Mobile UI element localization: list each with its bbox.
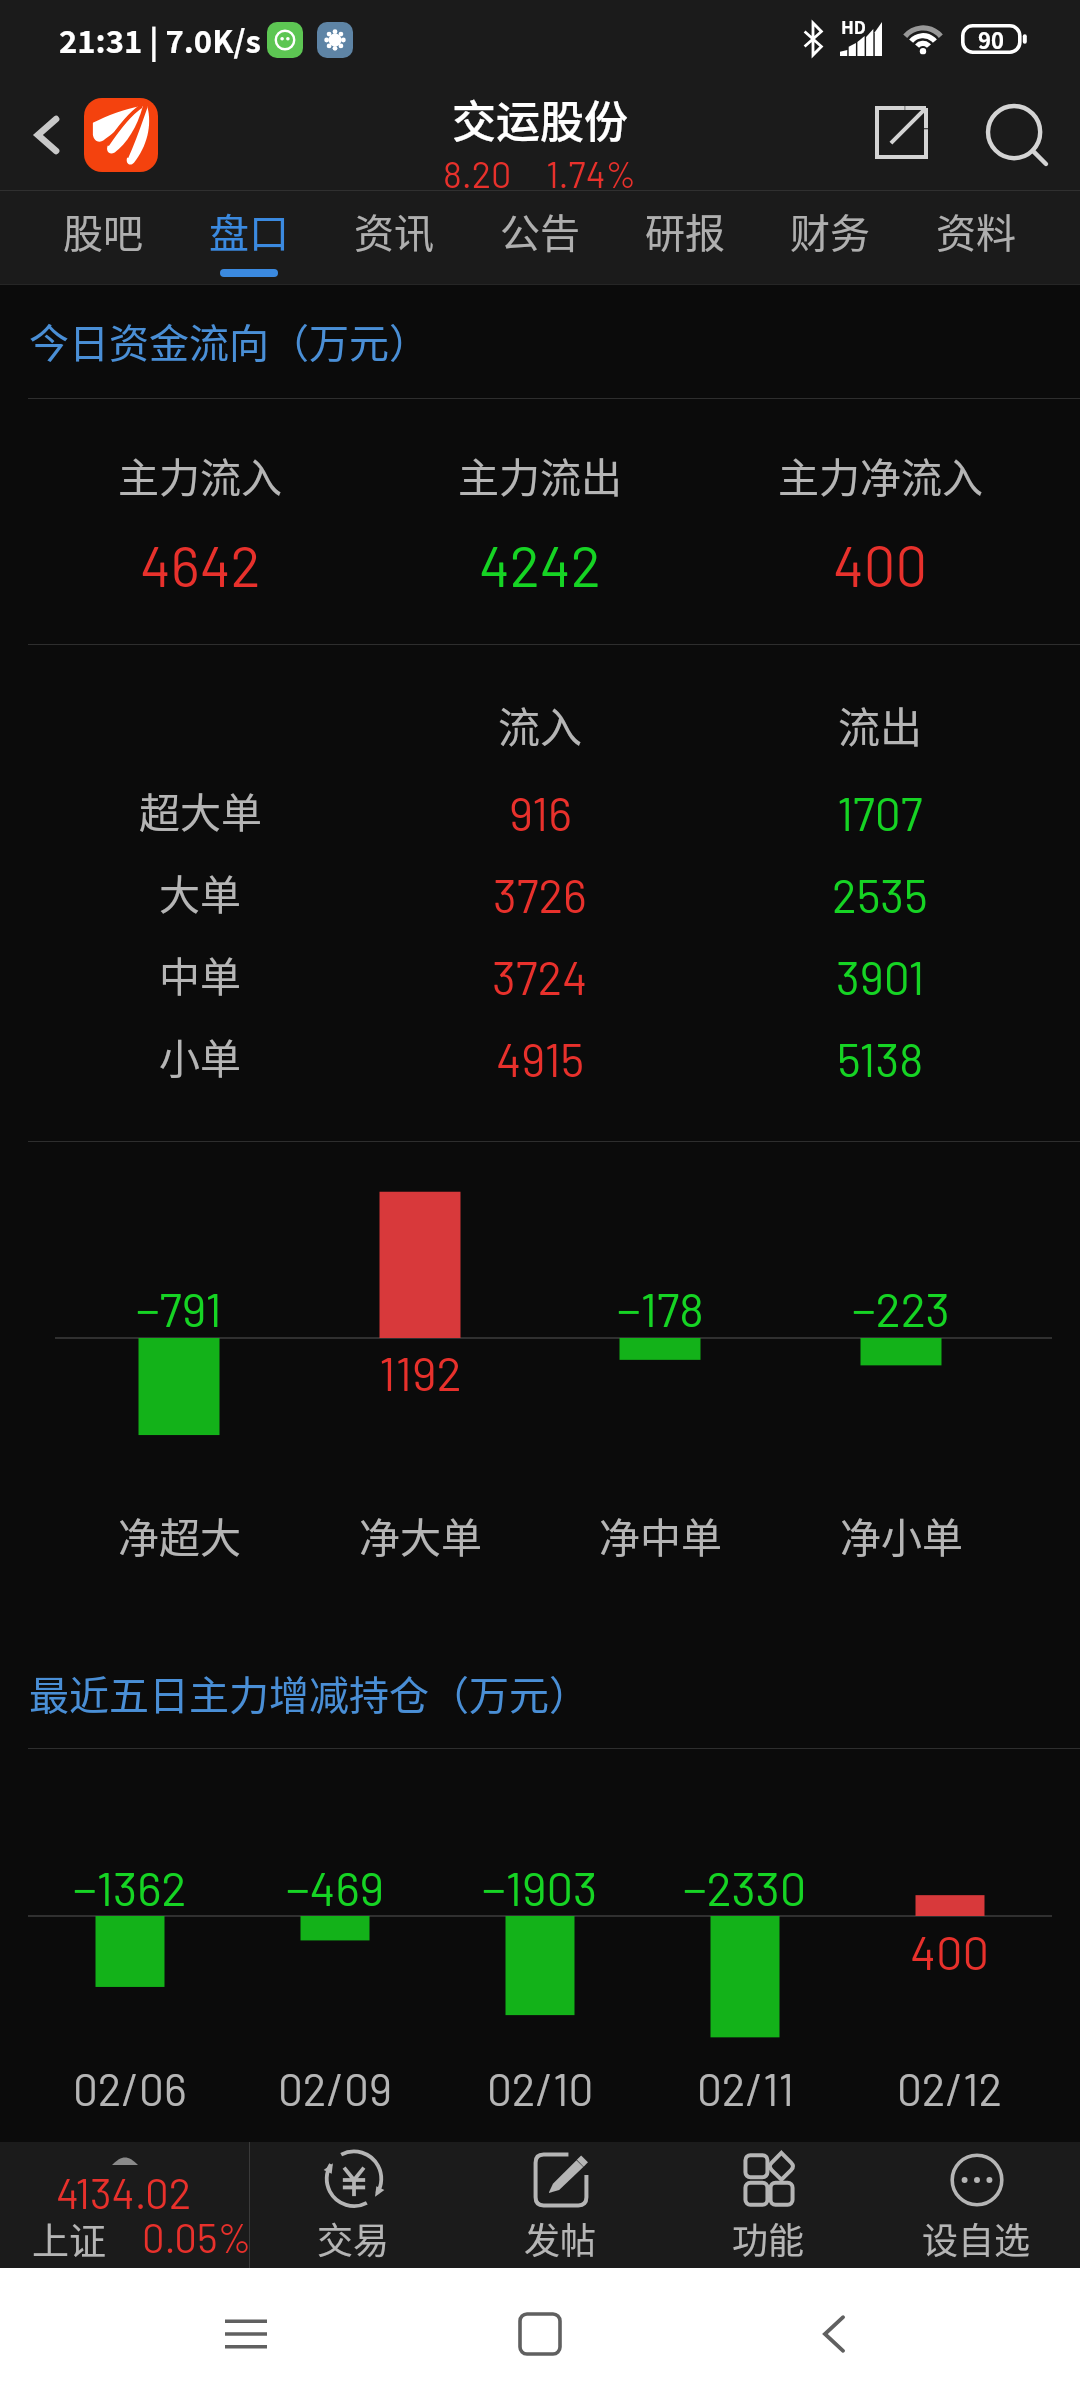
staticText: HD [841,14,867,39]
staticText: 02/10 [487,2062,594,2115]
button[interactable]: Recents [198,2286,294,2382]
button[interactable]: 发帖 [457,2142,664,2268]
staticText: 主力净流入 [778,445,983,504]
button[interactable]: 盘口 [177,191,321,285]
staticText: 400 [910,1923,990,1979]
staticText: 02/12 [897,2062,1003,2115]
staticText: 今日资金流向（万元） [29,312,429,370]
staticText: 净小单 [840,1505,963,1564]
button[interactable]: Share [861,92,941,172]
button[interactable]: 资讯 [322,191,466,285]
staticText: 流入 [498,694,583,755]
staticText: 4242 [479,531,601,598]
staticText: 净超大 [118,1505,241,1564]
button[interactable]: Back [14,102,80,168]
staticText: 3726 [493,867,587,922]
staticText: 盘口 [209,202,289,260]
staticText: 交易 [317,2212,390,2264]
staticText: 资料 [936,202,1016,260]
staticText: 资讯 [354,202,434,260]
staticText: 中单 [159,944,241,1003]
staticText: 1192 [379,1344,462,1400]
staticText: 1.74% [546,152,637,195]
staticText: 最近五日主力增减持仓（万元） [29,1664,589,1722]
staticText: 主力流出 [458,445,622,504]
staticText: 4134.02 [56,2167,192,2217]
staticText: 交运股份 [452,87,628,151]
button[interactable]: Search [974,92,1060,178]
staticText: 主力流入 [118,445,282,504]
button[interactable]: Back [786,2286,882,2382]
staticText: 流出 [838,694,923,755]
button[interactable]: 财务 [758,191,902,285]
staticText: 设自选 [922,2212,1031,2264]
staticText: 4915 [496,1031,585,1086]
staticText: 功能 [732,2212,805,2264]
staticText: 1707 [837,785,923,840]
staticText: 3724 [492,949,588,1004]
button[interactable]: 研报 [613,191,757,285]
staticText: 股吧 [63,202,143,260]
staticText: 400 [833,531,928,598]
staticText: 8.20 [443,152,512,195]
staticText: 超大单 [139,780,262,839]
staticText: 5138 [837,1031,924,1086]
button[interactable]: 公告 [468,191,612,285]
staticText: 净中单 [599,1505,722,1564]
staticText: 90 [978,23,1004,55]
button[interactable]: 股吧 [31,191,175,285]
button[interactable]: 4134.02 [0,2142,250,2268]
staticText: 21:31 | 7.0K/s [59,17,261,62]
staticText: 02/09 [278,2062,392,2115]
staticText: −2330 [683,1859,807,1915]
staticText: 916 [509,785,572,840]
staticText: 0.05% [142,2213,252,2261]
button[interactable]: 功能 [664,2142,872,2268]
staticText: 大单 [159,862,241,921]
button[interactable]: 交易 [250,2142,457,2268]
staticText: 02/11 [697,2062,794,2115]
staticText: −223 [852,1280,950,1336]
staticText: 发帖 [524,2212,597,2264]
staticText: −469 [286,1859,385,1915]
staticText: 02/06 [73,2062,187,2115]
staticText: −791 [136,1280,222,1336]
staticText: 公告 [500,202,580,260]
staticText: 研报 [645,202,725,260]
button[interactable]: Home [492,2286,588,2382]
button[interactable]: 设自选 [872,2142,1080,2268]
staticText: 财务 [790,202,870,260]
staticText: −1362 [73,1859,187,1915]
staticText: −178 [617,1280,704,1336]
staticText: 上证 [32,2212,106,2266]
staticText: −1903 [482,1859,598,1915]
staticText: 4642 [140,531,261,598]
button[interactable]: Eastmoney [84,98,158,172]
staticText: 3901 [836,949,925,1004]
staticText: 小单 [159,1026,241,1085]
button[interactable]: 资料 [904,191,1048,285]
staticText: 净大单 [359,1505,482,1564]
staticText: 2535 [832,867,928,922]
